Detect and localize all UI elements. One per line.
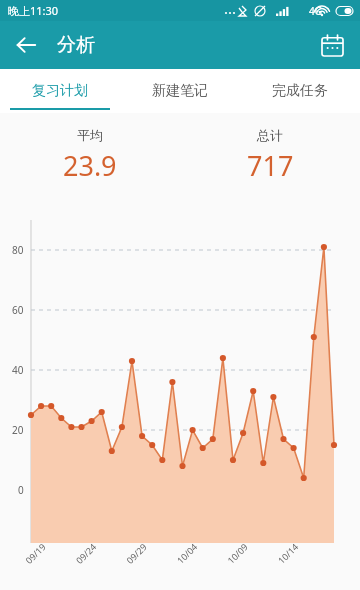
button[interactable]: Back — [6, 25, 46, 65]
button[interactable]: Calendar — [312, 25, 352, 65]
button[interactable]: 完成任务 — [240, 69, 360, 113]
staticText: 总计 — [257, 127, 283, 143]
staticText: 晚上11:30 — [8, 3, 59, 18]
staticText: 复习计划 — [32, 82, 88, 100]
staticText: 新建笔记 — [152, 82, 208, 100]
staticText: 717 — [247, 147, 294, 184]
staticText: 分析 — [57, 33, 95, 57]
button[interactable]: 新建笔记 — [120, 69, 240, 113]
staticText: 完成任务 — [272, 82, 328, 100]
staticText: 4G — [309, 4, 322, 18]
staticText: 平均 — [77, 127, 103, 143]
button[interactable]: 复习计划 — [0, 69, 120, 113]
staticText: 23.9 — [63, 147, 117, 184]
